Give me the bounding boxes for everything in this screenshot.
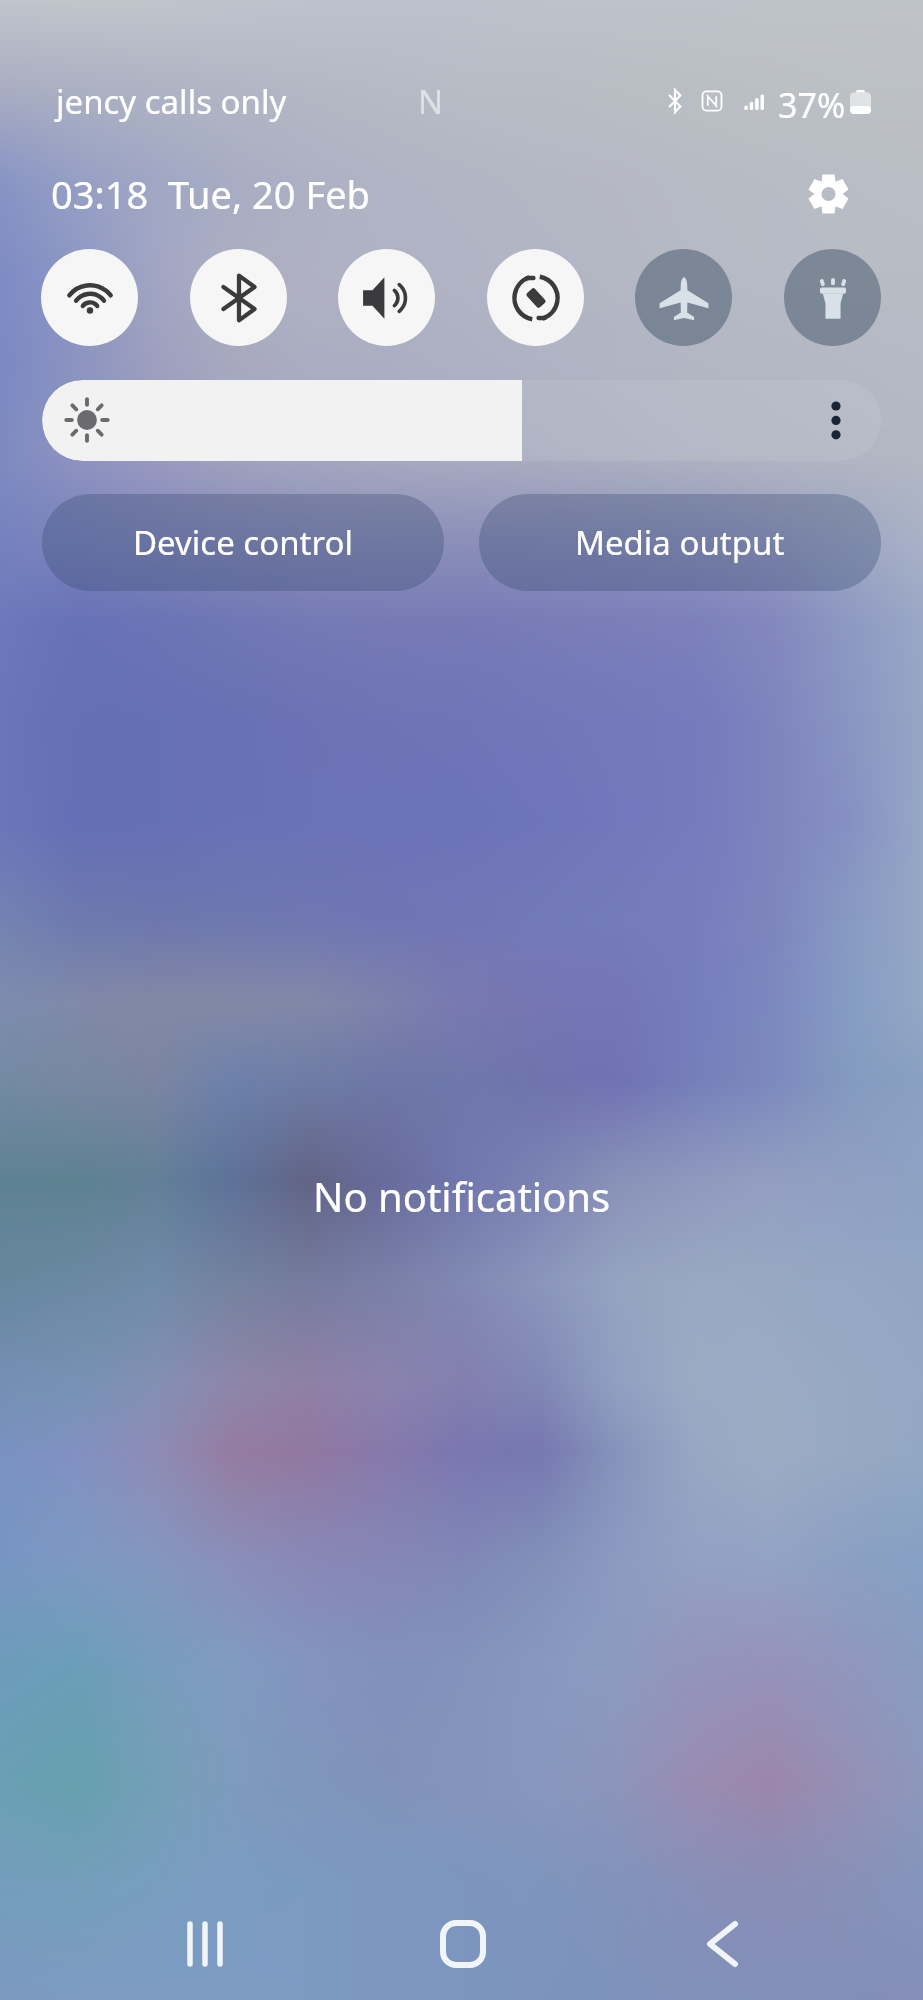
button[interactable]: Media output bbox=[479, 494, 881, 591]
button[interactable]: Flashlight bbox=[784, 249, 881, 346]
button[interactable]: Recents bbox=[165, 1904, 245, 1984]
staticText: Device control bbox=[133, 520, 353, 565]
button[interactable]: Wi-Fi bbox=[41, 249, 138, 346]
button[interactable]: Brightness bbox=[42, 380, 881, 461]
button[interactable]: Airplane mode bbox=[635, 249, 732, 346]
button[interactable]: Device control bbox=[42, 494, 444, 591]
button[interactable]: Auto rotate bbox=[487, 249, 584, 346]
staticText: No notifications bbox=[313, 1169, 611, 1223]
button[interactable]: Bluetooth bbox=[190, 249, 287, 346]
staticText: jency calls only bbox=[56, 79, 287, 124]
staticText: 37% bbox=[778, 82, 846, 128]
button[interactable]: Sound bbox=[338, 249, 435, 346]
staticText: Media output bbox=[575, 520, 785, 565]
staticText: 03:18 Tue, 20 Feb bbox=[51, 168, 370, 220]
button[interactable]: Settings bbox=[798, 164, 858, 224]
staticText: N bbox=[418, 79, 444, 124]
button[interactable]: Back bbox=[682, 1904, 762, 1984]
button[interactable]: Home bbox=[423, 1904, 503, 1984]
